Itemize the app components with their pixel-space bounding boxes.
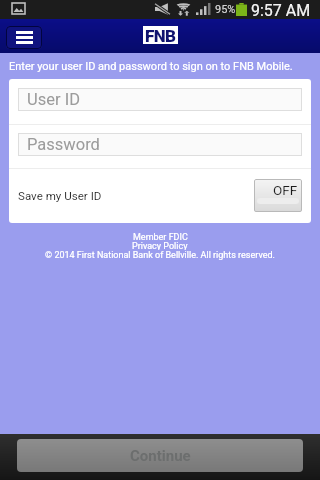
button[interactable]: Open navigation menu: [6, 26, 42, 49]
staticText: Password: [27, 135, 100, 154]
staticText: Continue: [130, 447, 191, 465]
staticText: Save my User ID: [18, 189, 102, 203]
staticText: User ID: [27, 90, 80, 109]
staticText: FNB: [145, 26, 176, 44]
button[interactable]: User ID: [18, 88, 302, 111]
staticText: OFF: [273, 182, 298, 198]
button[interactable]: Continue: [17, 439, 303, 472]
button[interactable]: Privacy Policy: [132, 241, 188, 250]
button[interactable]: Password: [18, 133, 302, 156]
button[interactable]: Save my User ID toggle, off: [254, 179, 302, 212]
staticText: © 2014 First National Bank of Bellville.…: [45, 250, 275, 261]
staticText: Enter your user ID and password to sign …: [9, 60, 293, 73]
staticText: 9:57 AM: [251, 1, 311, 20]
staticText: 95%: [215, 3, 236, 16]
staticText: Member FDIC: [133, 232, 188, 241]
